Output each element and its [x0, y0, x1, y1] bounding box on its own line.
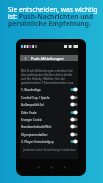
button[interactable]: Back — [20, 55, 78, 61]
staticText: 1. Bundesliga — [21, 88, 70, 92]
button[interactable]: Confed Cup / Spiele — [20, 94, 78, 101]
staticText: Olympiamedaillen — [21, 133, 70, 137]
button[interactable]: Außenpolitik Inl — [20, 101, 78, 108]
button[interactable]: Switch on — [70, 110, 78, 115]
staticText: 2. Player Entscheidgsp — [21, 140, 70, 144]
staticText: Confed Cup / Spiele — [21, 96, 70, 100]
staticText: Mit Push-Mitteilungen erhalten Sie die w… — [21, 69, 76, 85]
button[interactable]: Energie Contic — [20, 116, 78, 123]
button[interactable]: Switch off — [70, 117, 78, 122]
button[interactable]: Oder Ende — [20, 109, 78, 116]
staticText: Sie entscheiden, was wichtig ist: Push-N… — [8, 5, 99, 28]
button[interactable]: Switch off — [70, 95, 78, 100]
staticText: Push-Mitteilungen — [31, 56, 64, 61]
button[interactable]: Switch on — [70, 139, 78, 144]
staticText: Energie Contic — [21, 118, 70, 122]
button[interactable]: Back — [20, 55, 31, 61]
button[interactable]: Switch off — [70, 124, 78, 129]
staticText: Oder Ende — [21, 111, 70, 115]
staticText: Handwerkskraft/Wirt — [21, 125, 70, 129]
staticText: Jederzeit unter Einstellungen änderbar — [23, 148, 76, 152]
button[interactable]: Switch off — [70, 132, 78, 137]
button[interactable]: 1. Bundesliga — [20, 86, 78, 93]
button[interactable]: Olympiamedaillen — [20, 131, 78, 138]
button[interactable]: Switch on — [70, 87, 78, 92]
button[interactable]: Home — [45, 162, 58, 172]
button[interactable]: Handwerkskraft/Wirt — [20, 123, 78, 130]
button[interactable]: 2. Player Entscheidgsp — [20, 138, 78, 145]
button[interactable]: Recents — [58, 162, 71, 172]
staticText: Außenpolitik Inl — [21, 103, 70, 107]
button[interactable]: Back — [32, 162, 45, 172]
button[interactable]: Switch off — [70, 102, 78, 107]
